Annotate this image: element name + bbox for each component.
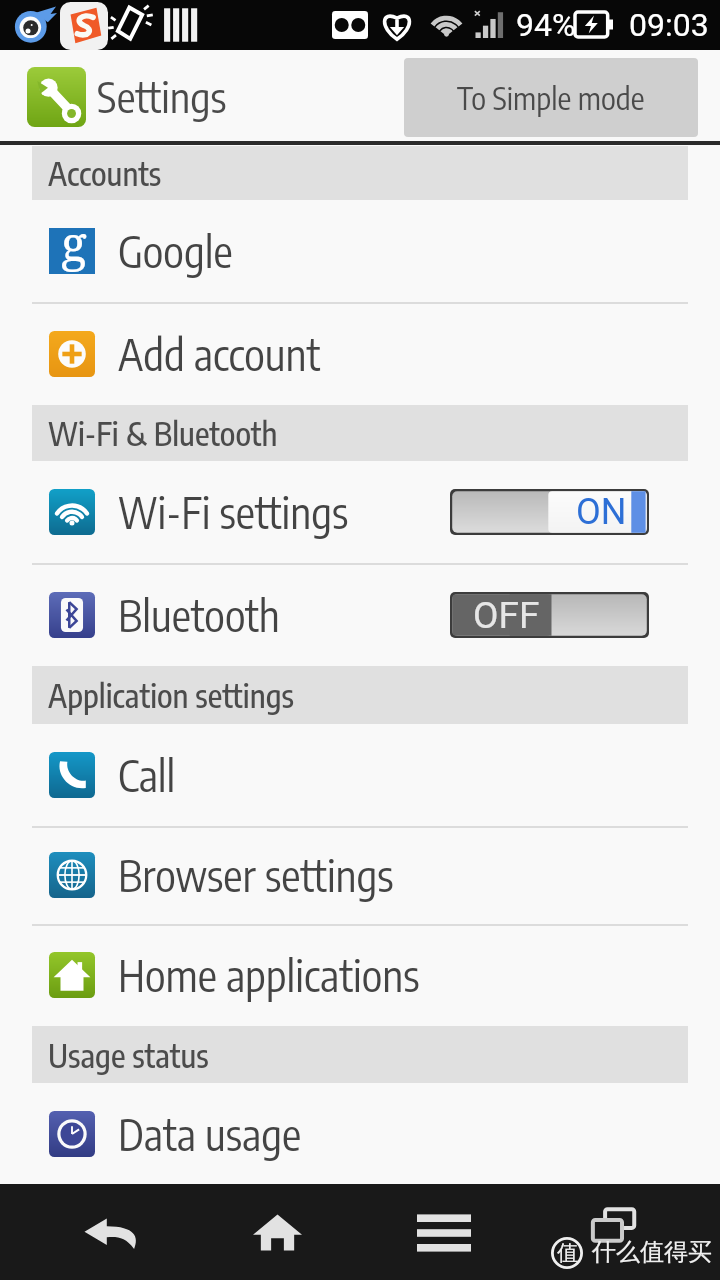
button[interactable]: Add account: [0, 302, 720, 405]
button[interactable]: Back: [40, 1184, 185, 1280]
button[interactable]: Menu: [380, 1184, 508, 1280]
button[interactable]: Recents: [552, 1184, 672, 1280]
button[interactable]: OFF: [450, 592, 649, 638]
button[interactable]: Data usage: [0, 1083, 720, 1184]
staticText: Usage status: [48, 1035, 209, 1075]
staticText: Data usage: [118, 1107, 302, 1161]
staticText: Google: [118, 224, 233, 278]
staticText: g: [61, 210, 87, 275]
button[interactable]: Browser settings: [0, 826, 720, 924]
button[interactable]: ON: [450, 489, 649, 535]
button[interactable]: g: [0, 200, 720, 302]
staticText: Accounts: [48, 153, 162, 193]
button[interactable]: Call: [0, 724, 720, 826]
staticText: Wi-Fi settings: [118, 485, 349, 539]
button[interactable]: Bluetooth: [0, 563, 720, 666]
staticText: To Simple mode: [457, 78, 645, 117]
staticText: 09:03: [629, 6, 709, 44]
staticText: 94%: [516, 6, 576, 44]
staticText: 值: [557, 1240, 578, 1266]
button[interactable]: Home: [215, 1184, 340, 1280]
staticText: Add account: [118, 327, 321, 381]
button[interactable]: Wi-Fi settings: [0, 461, 720, 563]
staticText: Settings: [97, 70, 227, 122]
staticText: OFF: [473, 594, 540, 637]
staticText: Wi-Fi & Bluetooth: [48, 413, 278, 453]
staticText: 什么值得买: [592, 1237, 712, 1267]
staticText: Call: [118, 748, 176, 802]
staticText: Browser settings: [118, 848, 394, 902]
staticText: ON: [576, 491, 627, 533]
staticText: Application settings: [48, 675, 294, 715]
staticText: Home applications: [118, 948, 420, 1002]
button[interactable]: To Simple mode: [404, 58, 698, 137]
staticText: Bluetooth: [118, 588, 280, 642]
button[interactable]: Home applications: [0, 924, 720, 1026]
